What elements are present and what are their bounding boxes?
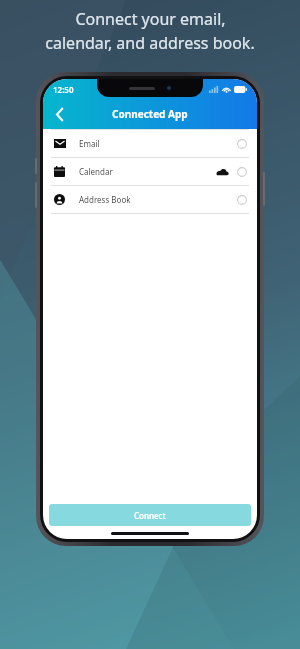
staticText: Connect your email, [75,8,226,30]
staticText: Email [79,138,100,149]
staticText: Calendar [79,166,113,177]
button[interactable]: Email [43,130,257,157]
button[interactable]: Calendar toggle [237,167,247,177]
button[interactable]: Email toggle [237,139,247,149]
staticText: Connect [134,510,166,521]
staticText: 12:50 [53,84,74,95]
staticText: Connected App [112,107,188,121]
button[interactable]: Calendar [43,158,257,185]
button[interactable]: Connect [49,504,251,526]
staticText: Address Book [79,194,131,205]
staticText: calendar, and address book. [45,32,255,54]
button[interactable]: Back [43,99,77,129]
button[interactable]: Address Book toggle [237,195,247,205]
button[interactable]: Address Book [43,186,257,213]
